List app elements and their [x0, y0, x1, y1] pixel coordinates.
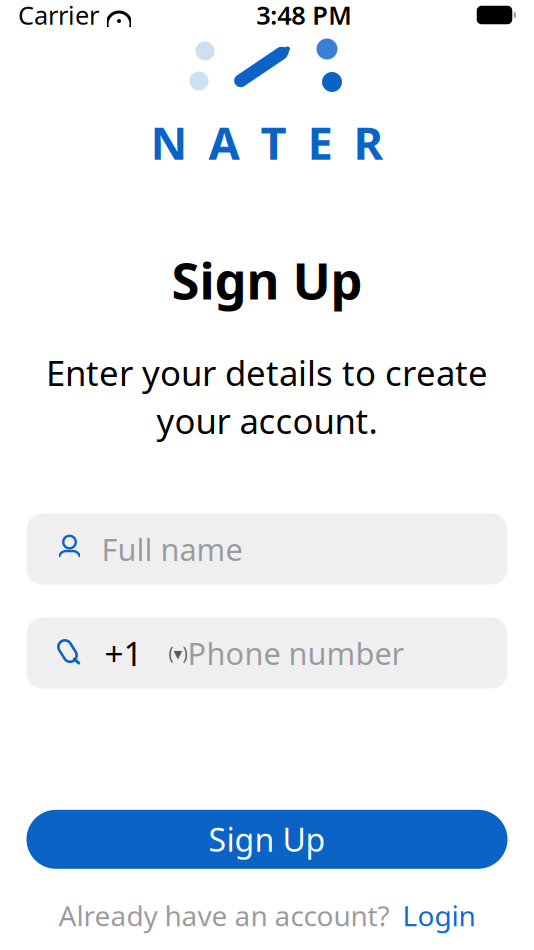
staticText: Login — [402, 897, 475, 934]
staticText: Sign Up — [171, 246, 362, 313]
button[interactable]: +1 — [26, 618, 507, 689]
staticText: Full name — [101, 529, 242, 569]
staticText: A — [208, 112, 239, 172]
button[interactable]: Sign Up — [26, 810, 507, 869]
staticText: Phone number — [187, 633, 404, 673]
staticText: N — [150, 112, 187, 172]
staticText: T — [260, 112, 286, 172]
staticText: 3:48 PM — [256, 0, 352, 32]
staticText: your account. — [156, 397, 377, 443]
staticText: Enter your details to create — [46, 349, 488, 395]
staticText: Already have an account? — [58, 897, 389, 934]
staticText: +1 — [104, 631, 142, 675]
staticText: Carrier — [18, 0, 99, 32]
button[interactable]: Login — [402, 897, 475, 934]
staticText: Sign Up — [208, 818, 325, 861]
button[interactable]: Full name — [26, 514, 507, 585]
staticText: R — [353, 112, 383, 172]
staticText: (▾) — [168, 641, 187, 664]
staticText: E — [307, 112, 332, 172]
